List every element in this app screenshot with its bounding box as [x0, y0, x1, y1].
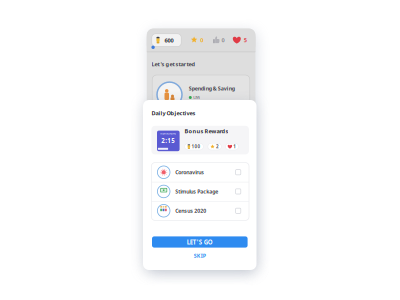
- staticText: Coronavirus: [175, 169, 204, 176]
- staticText: Let's get started: [152, 60, 196, 68]
- staticText: Spending & Saving: [189, 85, 235, 92]
- staticText: SKIP: [194, 252, 206, 259]
- button[interactable]: SKIP: [152, 250, 248, 261]
- staticText: 0: [200, 36, 203, 44]
- staticText: REMAINING: [160, 132, 176, 135]
- staticText: Census 2020: [175, 207, 206, 214]
- staticText: 1: [233, 143, 236, 150]
- staticText: 2: [216, 143, 219, 150]
- staticText: 100: [191, 143, 200, 150]
- staticText: 5: [244, 36, 247, 44]
- staticText: LET'S GO: [187, 238, 213, 246]
- button[interactable]: Stimulus Package: [151, 182, 249, 201]
- staticText: 2:15: [161, 136, 175, 145]
- staticText: 0: [221, 36, 224, 44]
- staticText: Bonus Rewards: [184, 127, 228, 135]
- staticText: Daily Objectives: [151, 109, 195, 117]
- button[interactable]: Census 2020: [151, 201, 249, 220]
- staticText: Stimulus Package: [175, 188, 218, 195]
- staticText: LIVE: [193, 95, 200, 100]
- button[interactable]: LET'S GO: [152, 236, 248, 248]
- button[interactable]: Coronavirus: [151, 163, 249, 182]
- staticText: 600: [165, 36, 174, 44]
- button[interactable]: Points: 600: [152, 34, 181, 46]
